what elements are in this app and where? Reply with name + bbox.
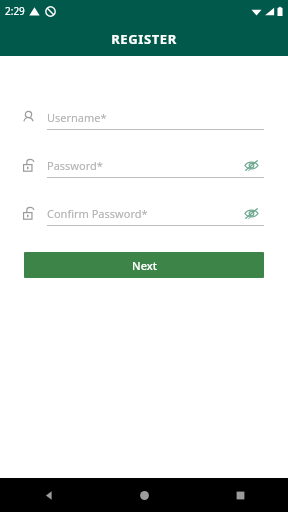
staticText: Confirm Password* — [47, 206, 148, 221]
button[interactable]: Password* — [0, 152, 288, 178]
staticText: Password* — [47, 158, 103, 173]
staticText: Username* — [47, 110, 107, 125]
button[interactable]: Recent apps — [192, 478, 288, 512]
staticText: REGISTER — [111, 30, 177, 48]
button[interactable]: Next — [24, 252, 264, 278]
button[interactable]: Show password — [242, 156, 260, 174]
button[interactable]: Show password — [242, 204, 260, 222]
staticText: Next — [132, 258, 157, 273]
button[interactable]: Confirm Password* — [0, 200, 288, 226]
staticText: 2:29 — [5, 4, 25, 18]
button[interactable]: Back — [0, 478, 96, 512]
button[interactable]: Username* — [0, 104, 288, 130]
button[interactable]: Home — [96, 478, 192, 512]
